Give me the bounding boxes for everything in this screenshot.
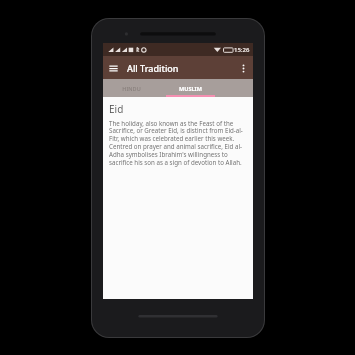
staticText: Eid [109, 102, 124, 116]
button[interactable]: Open navigation menu [103, 58, 123, 78]
staticText: All Tradition [127, 62, 179, 74]
button[interactable]: HINDU [103, 79, 160, 97]
staticText: 15:26 [234, 46, 250, 54]
button[interactable]: More options [233, 58, 253, 78]
staticText: MUSLIM [179, 85, 202, 92]
staticText: HINDU [122, 85, 141, 92]
staticText: The holiday, also known as the Feast of … [109, 119, 247, 167]
button[interactable]: MUSLIM [160, 79, 220, 97]
